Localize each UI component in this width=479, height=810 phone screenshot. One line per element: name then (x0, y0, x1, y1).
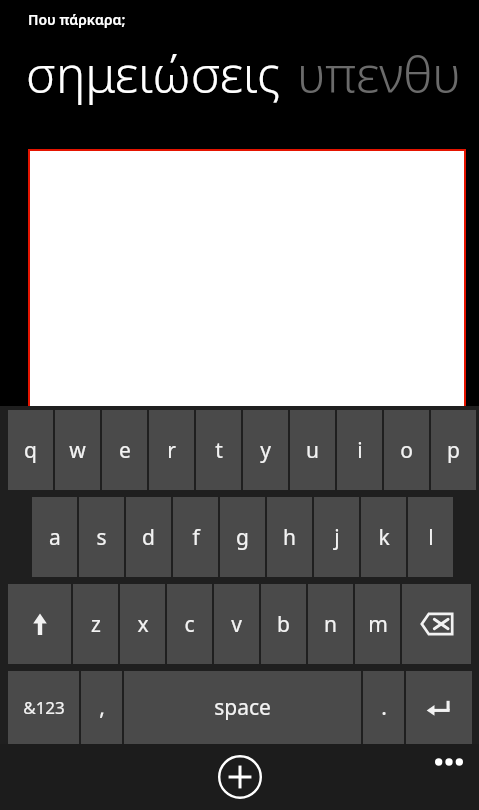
staticText: k (378, 523, 390, 552)
button[interactable]: h (267, 497, 312, 577)
staticText: g (236, 523, 249, 552)
button[interactable]: space (124, 671, 361, 744)
button[interactable]: b (261, 584, 306, 664)
staticText: u (306, 436, 319, 465)
button[interactable]: n (308, 584, 353, 664)
staticText: y (260, 436, 271, 465)
button[interactable]: c (167, 584, 212, 664)
staticText: h (283, 523, 296, 552)
button[interactable]: z (73, 584, 118, 664)
staticText: Που πάρκαρα; (28, 10, 126, 29)
staticText: r (167, 436, 176, 465)
staticText: c (184, 610, 195, 639)
staticText: l (428, 523, 434, 552)
button[interactable]: o (384, 410, 429, 490)
button[interactable]: s (79, 497, 124, 577)
staticText: p (447, 436, 460, 465)
staticText: f (192, 523, 200, 552)
button[interactable]: t (196, 410, 241, 490)
staticText: q (24, 436, 37, 465)
staticText: m (368, 610, 388, 639)
staticText: , (99, 693, 105, 722)
button[interactable]: a (32, 497, 77, 577)
button[interactable]: w (55, 410, 100, 490)
button[interactable]: Shift (8, 584, 71, 664)
button[interactable]: y (243, 410, 288, 490)
button[interactable]: . (363, 671, 404, 744)
staticText: d (142, 523, 155, 552)
button[interactable]: r (149, 410, 194, 490)
button[interactable]: p (431, 410, 476, 490)
staticText: e (119, 436, 131, 465)
button[interactable]: m (355, 584, 400, 664)
button[interactable] (28, 149, 466, 424)
button[interactable]: i (337, 410, 382, 490)
button[interactable]: x (120, 584, 165, 664)
staticText: v (231, 610, 242, 639)
staticText: z (91, 610, 101, 639)
staticText: n (324, 610, 337, 639)
staticText: w (69, 436, 86, 465)
staticText: b (277, 610, 290, 639)
button[interactable]: υπενθυμίσεις (297, 40, 479, 108)
button[interactable]: , (81, 671, 122, 744)
button[interactable]: l (408, 497, 453, 577)
staticText: j (334, 523, 340, 552)
button[interactable]: j (314, 497, 359, 577)
button[interactable]: New note (211, 748, 269, 806)
staticText: &123 (23, 696, 65, 719)
staticText: o (400, 436, 413, 465)
button[interactable]: e (102, 410, 147, 490)
staticText: υπενθυμίσεις (297, 40, 479, 108)
button[interactable]: v (214, 584, 259, 664)
button[interactable]: q (8, 410, 53, 490)
button[interactable]: u (290, 410, 335, 490)
button[interactable]: &123 (8, 671, 79, 744)
button[interactable]: Backspace (402, 584, 471, 664)
button[interactable]: Enter (406, 671, 472, 744)
staticText: t (215, 436, 223, 465)
staticText: a (49, 523, 61, 552)
button[interactable]: More options (425, 744, 473, 780)
staticText: space (214, 693, 271, 722)
staticText: s (96, 523, 107, 552)
button[interactable]: f (173, 497, 218, 577)
button[interactable]: k (361, 497, 406, 577)
staticText: σημειώσεις (26, 40, 281, 108)
staticText: i (357, 436, 363, 465)
staticText: x (137, 610, 149, 639)
button[interactable]: d (126, 497, 171, 577)
staticText: . (381, 693, 387, 722)
button[interactable]: g (220, 497, 265, 577)
